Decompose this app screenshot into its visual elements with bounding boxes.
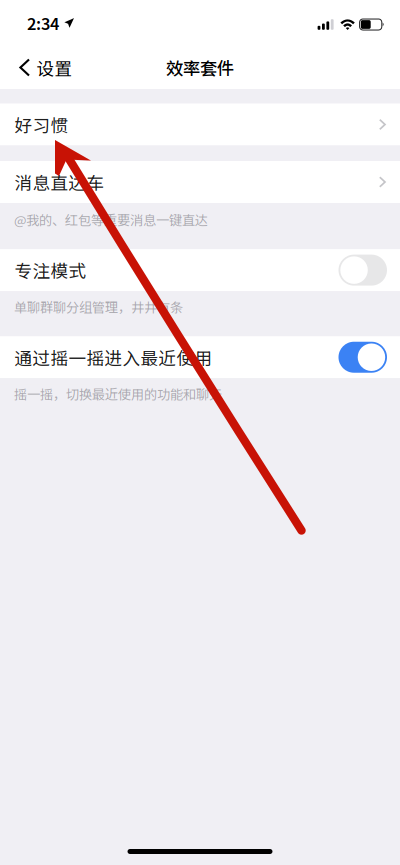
staticText: 好习惯: [14, 112, 68, 137]
staticText: 效率套件: [166, 55, 234, 80]
staticText: @我的、红包等重要消息一键直达: [14, 210, 208, 229]
staticText: 通过摇一摇进入最近使用: [14, 344, 212, 370]
staticText: 摇一摇，切换最近使用的功能和聊天: [14, 384, 222, 403]
staticText: 专注模式: [14, 257, 86, 283]
staticText: 单聊群聊分组管理，井井有条: [14, 297, 183, 316]
button[interactable]: 好习惯: [0, 103, 400, 145]
staticText: 设置: [36, 55, 72, 80]
staticText: 消息直达车: [14, 169, 104, 195]
staticText: 2:34: [27, 11, 59, 35]
button[interactable]: 设置: [0, 46, 84, 89]
button[interactable]: 专注模式: [0, 249, 400, 291]
button[interactable]: 通过摇一摇进入最近使用: [0, 336, 400, 378]
button[interactable]: 消息直达车: [0, 161, 400, 203]
